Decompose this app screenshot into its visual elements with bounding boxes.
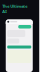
staticText: AI <box>2 9 7 14</box>
staticText: The Ultimate <box>2 3 27 9</box>
